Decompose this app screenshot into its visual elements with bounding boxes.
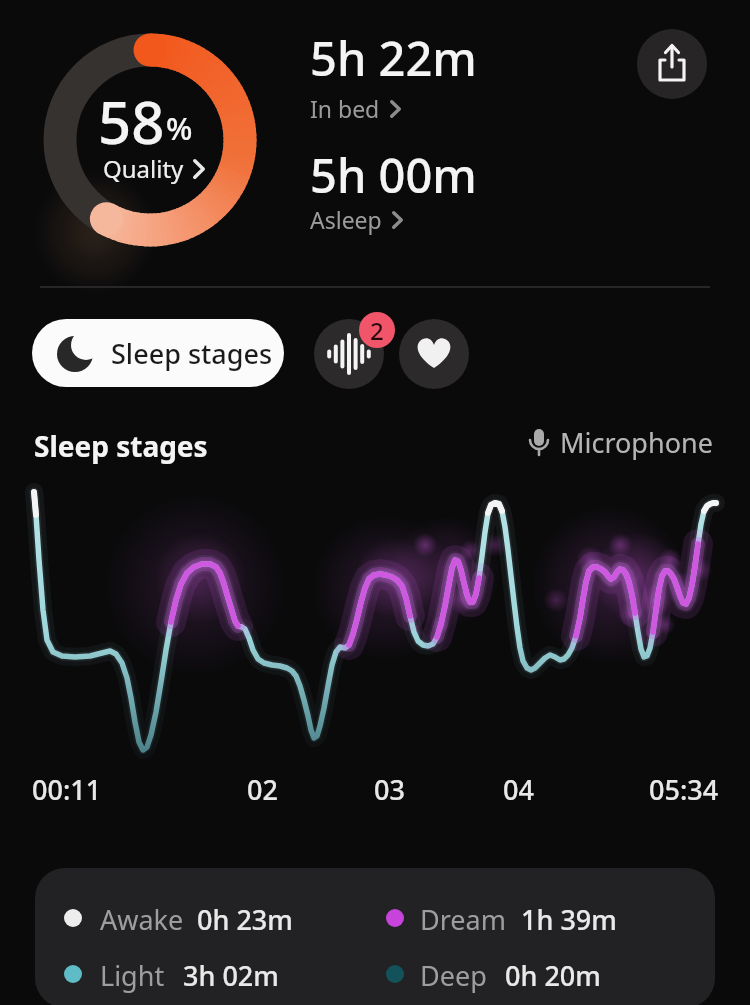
button[interactable] <box>637 29 707 99</box>
button[interactable]: 58 <box>98 82 192 161</box>
staticText: Awake <box>100 901 184 938</box>
staticText: Dream <box>420 901 506 938</box>
button[interactable]: Sleep stages <box>32 319 284 387</box>
staticText: % <box>166 107 193 149</box>
button[interactable] <box>399 319 469 389</box>
staticText: Sleep stages <box>34 427 208 465</box>
button[interactable]: Microphone <box>526 424 713 461</box>
staticText: In bed <box>310 93 380 124</box>
staticText: Sleep stages <box>111 335 273 372</box>
button[interactable]: In bed <box>310 93 401 124</box>
button[interactable]: Quality <box>103 152 205 185</box>
staticText: Light <box>100 957 165 994</box>
staticText: 5h 00m <box>310 143 477 207</box>
staticText: 00:11 <box>32 771 102 808</box>
staticText: 2 <box>370 314 384 347</box>
staticText: 05:34 <box>649 771 719 808</box>
staticText: Asleep <box>310 204 382 235</box>
staticText: 03 <box>374 771 405 808</box>
staticText: 1h 39m <box>521 901 617 938</box>
staticText: 0h 20m <box>505 957 601 994</box>
staticText: 04 <box>503 771 534 808</box>
button[interactable] <box>314 319 384 389</box>
button[interactable]: Asleep <box>310 204 403 235</box>
staticText: Microphone <box>560 424 713 461</box>
staticText: Quality <box>103 152 184 185</box>
staticText: 3h 02m <box>183 957 279 994</box>
staticText: 0h 23m <box>197 901 293 938</box>
staticText: 5h 22m <box>310 26 477 90</box>
staticText: Deep <box>420 957 487 994</box>
staticText: 58 <box>98 82 165 161</box>
staticText: 02 <box>247 771 278 808</box>
